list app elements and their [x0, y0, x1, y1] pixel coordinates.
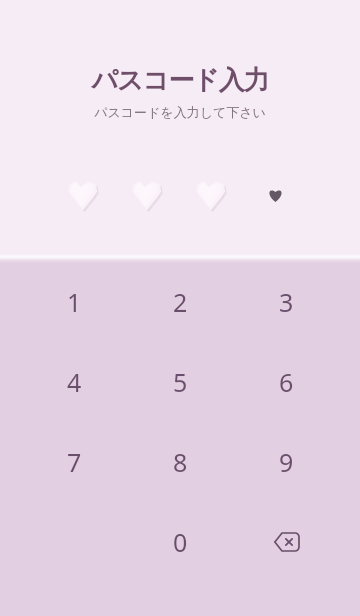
other: Passcode: 3 of 4 digits entered — [0, 173, 360, 217]
button[interactable]: 3 — [233, 262, 339, 342]
staticText: 8 — [173, 445, 188, 479]
button[interactable]: 7 — [21, 422, 127, 502]
staticText: パスコードを入力して下さい — [0, 104, 360, 120]
button[interactable]: 9 — [233, 422, 339, 502]
button[interactable]: 2 — [127, 262, 233, 342]
staticText: 4 — [67, 365, 82, 399]
staticText: パスコード入力 — [0, 64, 360, 97]
button[interactable]: 8 — [127, 422, 233, 502]
staticText: 2 — [173, 285, 188, 319]
staticText: 5 — [173, 365, 188, 399]
button[interactable]: Backspace — [233, 502, 339, 582]
button[interactable]: 4 — [21, 342, 127, 422]
button[interactable]: 0 — [127, 502, 233, 582]
button[interactable]: 1 — [21, 262, 127, 342]
staticText: 3 — [279, 285, 294, 319]
staticText: 0 — [173, 525, 188, 559]
staticText: 6 — [279, 365, 294, 399]
staticText: 1 — [67, 285, 82, 319]
staticText: 9 — [279, 445, 294, 479]
button[interactable]: 5 — [127, 342, 233, 422]
staticText: 7 — [67, 445, 82, 479]
button[interactable]: 6 — [233, 342, 339, 422]
